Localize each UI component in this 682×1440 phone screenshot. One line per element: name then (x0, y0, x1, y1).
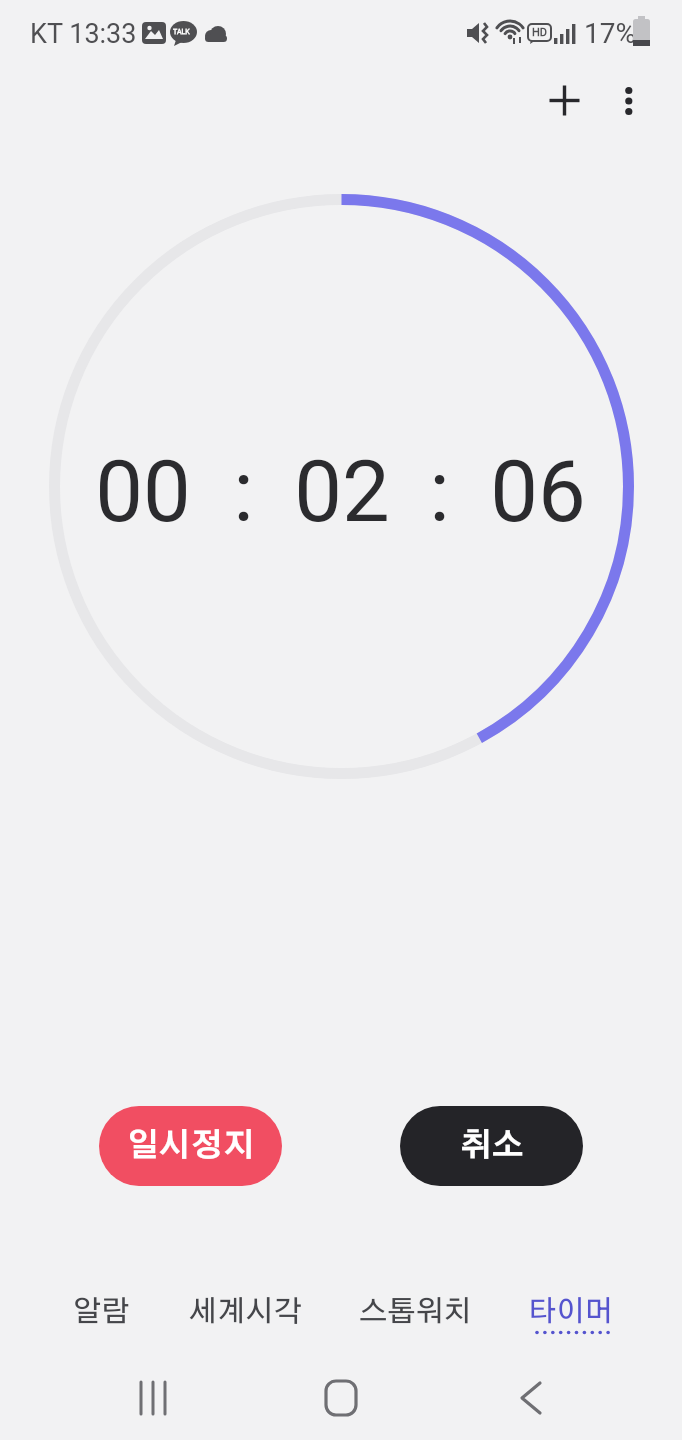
staticText: 타이머 (528, 1298, 613, 1327)
button[interactable] (307, 1364, 375, 1432)
staticText: 02 (294, 442, 390, 542)
staticText: 06 (490, 442, 586, 542)
staticText: KT 13:33 (30, 18, 137, 50)
button[interactable] (604, 73, 652, 121)
button[interactable] (537, 73, 593, 129)
staticText: HD (532, 26, 548, 39)
staticText: 00 (95, 442, 191, 542)
staticText: TALK (173, 28, 190, 36)
staticText: : (233, 442, 254, 542)
staticText: 알람 (73, 1298, 130, 1327)
button[interactable]: 세계시각 (165, 1288, 325, 1336)
staticText: 세계시각 (189, 1298, 302, 1327)
button[interactable]: 알람 (21, 1288, 181, 1336)
staticText: 17% (584, 17, 636, 50)
button[interactable]: 타이머 (490, 1288, 650, 1336)
staticText: 스톱워치 (359, 1298, 472, 1327)
button[interactable]: 일시정지 (99, 1106, 282, 1186)
button[interactable] (497, 1364, 565, 1432)
button[interactable]: 스톱워치 (335, 1288, 495, 1336)
staticText: : (429, 442, 450, 542)
button[interactable] (117, 1364, 185, 1432)
button[interactable]: 취소 (400, 1106, 583, 1186)
staticText: 취소 (460, 1130, 524, 1162)
staticText: 일시정지 (127, 1130, 255, 1162)
